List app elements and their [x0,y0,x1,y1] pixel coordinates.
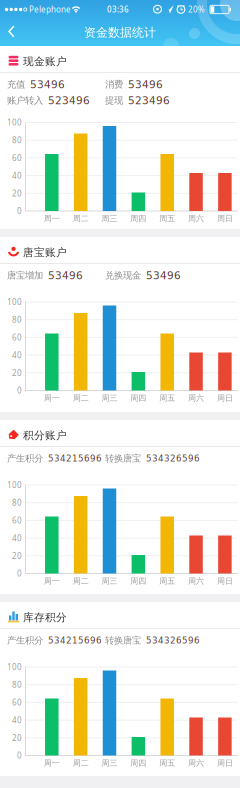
staticText: 534326596 [146,635,200,645]
staticText: 周一 [44,576,60,586]
staticText: 20 [12,188,22,199]
staticText: 40 [12,170,22,181]
staticText: 523496 [48,94,90,107]
staticText: 周三 [101,758,117,768]
staticText: 周六 [188,214,204,223]
staticText: 80 [12,135,22,145]
staticText: 0 [17,750,22,761]
staticText: 534215696 [48,453,102,463]
staticText: 周二 [73,576,89,586]
staticText: 53496 [146,269,181,282]
staticText: 60 [12,153,22,163]
staticText: 周四 [130,214,146,223]
staticText: 80 [12,314,22,325]
staticText: 40 [12,350,22,360]
staticText: 积分账户 [23,429,67,442]
staticText: 100 [7,480,22,490]
staticText: 充值 [7,79,25,90]
staticText: 周日 [217,576,233,586]
button[interactable]: Back [0,0,22,46]
staticText: 库存积分 [23,611,67,624]
staticText: 产生积分 [7,635,43,646]
staticText: 100 [7,662,22,672]
staticText: 周四 [130,576,146,586]
staticText: 消费 [105,79,123,90]
button[interactable]: 积分账户 [0,420,240,448]
staticText: 周一 [44,393,60,403]
staticText: 60 [12,515,22,526]
staticText: 20 [12,550,22,561]
staticText: 转换唐宝 [105,453,141,464]
staticText: 周五 [159,393,175,403]
staticText: 周二 [73,393,89,403]
staticText: 0 [17,206,22,216]
button[interactable]: 现金账户 [0,46,240,74]
staticText: 周日 [217,214,233,223]
staticText: 唐宝账户 [23,246,67,259]
staticText: 周六 [188,758,204,768]
staticText: 现金账户 [23,55,67,68]
staticText: 40 [12,715,22,725]
staticText: 周四 [130,758,146,768]
staticText: 20 [12,367,22,378]
staticText: 产生积分 [7,453,43,464]
staticText: 60 [12,332,22,343]
staticText: 周二 [73,758,89,768]
staticText: 100 [7,117,22,128]
staticText: 0 [17,385,22,396]
staticText: 60 [12,697,22,708]
staticText: 周六 [188,576,204,586]
staticText: 53496 [128,78,163,91]
staticText: 周二 [73,214,89,223]
staticText: 转换唐宝 [105,635,141,646]
staticText: 20% [188,4,205,15]
staticText: 周五 [159,214,175,223]
staticText: 0 [17,568,22,579]
staticText: 周一 [44,214,60,223]
staticText: Pelephone [29,4,71,15]
staticText: 周日 [217,758,233,768]
staticText: 周三 [101,214,117,223]
staticText: 周四 [130,393,146,403]
staticText: 53496 [48,269,83,282]
staticText: 兑换现金 [105,270,141,281]
staticText: 账户转入 [7,95,43,106]
staticText: 提现 [105,95,123,106]
staticText: 80 [12,497,22,508]
staticText: 周六 [188,393,204,403]
staticText: 53496 [30,78,65,91]
staticText: 80 [12,679,22,690]
staticText: 534215696 [48,635,102,645]
staticText: 534326596 [146,453,200,463]
staticText: 周五 [159,576,175,586]
staticText: 周三 [101,393,117,403]
button[interactable]: 库存积分 [0,602,240,630]
staticText: 523496 [128,94,170,107]
staticText: 周一 [44,758,60,768]
staticText: 周日 [217,393,233,403]
button[interactable]: 唐宝账户 [0,237,240,265]
staticText: 周三 [101,576,117,586]
staticText: 100 [7,297,22,307]
staticText: 唐宝增加 [7,270,43,281]
staticText: 20 [12,732,22,743]
staticText: 40 [12,533,22,543]
staticText: 03:36 [107,4,129,15]
staticText: 周五 [159,758,175,768]
staticText: 资金数据统计 [84,25,156,40]
